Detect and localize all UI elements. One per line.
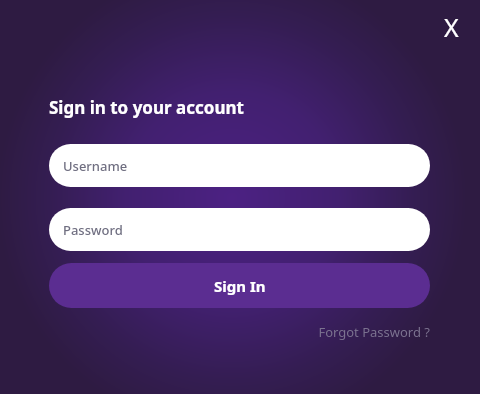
button[interactable]: Password [49,208,430,251]
staticText: Sign In [214,276,266,296]
button[interactable]: Sign In [49,263,430,308]
button[interactable]: Close [428,4,474,50]
staticText: Username [63,157,128,175]
staticText: Sign in to your account [49,96,244,119]
staticText: Password [63,221,123,239]
staticText: X [444,10,459,44]
staticText: Forgot Password ? [318,323,430,341]
button[interactable]: Forgot Password ? [318,323,430,341]
button[interactable]: Username [49,144,430,187]
